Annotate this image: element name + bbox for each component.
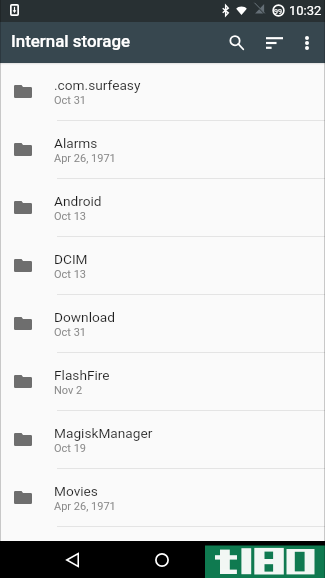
button[interactable]: Alarms	[0, 121, 325, 178]
staticText: Internal storage	[11, 31, 131, 51]
staticText: Alarms	[54, 135, 98, 151]
staticText: DCIM	[54, 251, 88, 267]
staticText: Movies	[54, 483, 98, 499]
staticText: FlashFire	[54, 367, 110, 383]
button[interactable]: DCIM	[0, 237, 325, 294]
button[interactable]: Android	[0, 179, 325, 236]
staticText: Download	[54, 309, 115, 325]
button[interactable]: Back	[52, 541, 92, 578]
button[interactable]: Sort	[256, 22, 292, 63]
button[interactable]: Movies	[0, 469, 325, 526]
staticText: Oct 31	[54, 94, 87, 107]
staticText: Oct 19	[54, 442, 87, 455]
button[interactable]: FlashFire	[0, 353, 325, 410]
staticText: Nov 2	[54, 384, 83, 397]
staticText: Apr 26, 1971	[54, 500, 116, 513]
button[interactable]: .com.surfeasy	[0, 63, 325, 120]
button[interactable]: More options	[292, 22, 322, 63]
button[interactable]: Search	[218, 22, 254, 63]
staticText: Oct 13	[54, 210, 87, 223]
staticText: Oct 31	[54, 326, 87, 339]
staticText: Android	[54, 193, 102, 209]
button[interactable]: MagiskManager	[0, 411, 325, 468]
staticText: Apr 26, 1971	[54, 152, 116, 165]
button[interactable]: Recents	[232, 541, 272, 578]
button[interactable]: Home	[142, 541, 182, 578]
staticText: 99	[274, 7, 283, 15]
staticText: .com.surfeasy	[54, 77, 141, 93]
staticText: MagiskManager	[54, 425, 153, 441]
staticText: Oct 13	[54, 268, 87, 281]
staticText: 10:32	[289, 3, 322, 18]
button[interactable]: Download	[0, 295, 325, 352]
